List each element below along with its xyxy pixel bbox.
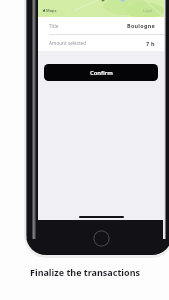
staticText: Amount selected xyxy=(49,40,87,46)
staticText: Finalize the transactions xyxy=(30,266,140,278)
staticText: Legal xyxy=(143,8,153,13)
button[interactable]: Amount selected xyxy=(38,35,164,51)
staticText: 7 h xyxy=(146,40,155,47)
button[interactable]: Title xyxy=(38,17,164,34)
button[interactable]: Home xyxy=(93,230,110,247)
staticText: Title xyxy=(49,23,59,29)
button[interactable]: Confirm xyxy=(44,64,158,81)
staticText: Boulogne xyxy=(127,22,155,29)
staticText: Confirm xyxy=(90,69,113,77)
staticText: Maps xyxy=(46,8,57,13)
